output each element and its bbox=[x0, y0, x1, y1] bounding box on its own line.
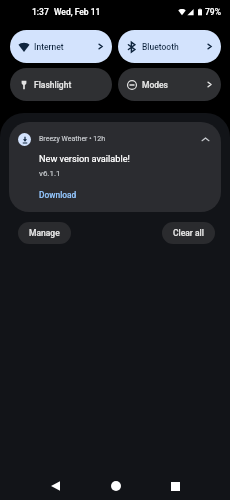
staticText: v6.1.1 bbox=[39, 169, 61, 178]
staticText: 79% bbox=[205, 7, 221, 17]
staticText: New version available! bbox=[39, 153, 130, 164]
staticText: Clear all bbox=[173, 228, 204, 238]
staticText: 1:37 bbox=[32, 7, 49, 17]
button[interactable]: Manage bbox=[18, 222, 71, 244]
button[interactable]: Recent apps bbox=[157, 468, 194, 500]
staticText: Breezy Weather • 12h bbox=[39, 135, 106, 143]
staticText: Manage bbox=[29, 228, 60, 238]
staticText: Download bbox=[39, 190, 77, 200]
button[interactable]: Internet bbox=[10, 30, 112, 63]
staticText: Modes bbox=[142, 80, 168, 90]
button[interactable]: Breezy Weather • 12h bbox=[9, 122, 221, 212]
button[interactable]: Clear all bbox=[162, 222, 215, 244]
button[interactable]: Modes bbox=[118, 68, 221, 101]
staticText: Flashlight bbox=[34, 80, 72, 90]
staticText: Internet bbox=[34, 42, 64, 52]
button[interactable]: Back bbox=[37, 468, 74, 500]
button[interactable]: Home bbox=[97, 468, 134, 500]
staticText: Wed, Feb 11 bbox=[54, 7, 101, 17]
button[interactable]: Bluetooth bbox=[118, 30, 221, 63]
staticText: Bluetooth bbox=[142, 42, 179, 52]
button[interactable]: Flashlight bbox=[10, 68, 112, 101]
button[interactable]: Collapse notification bbox=[197, 131, 213, 147]
button[interactable]: Download bbox=[39, 190, 77, 200]
